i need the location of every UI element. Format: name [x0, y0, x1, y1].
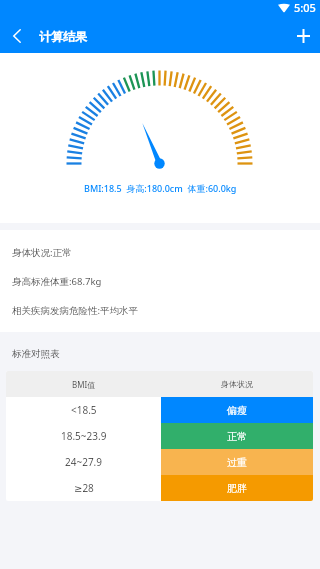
staticText: 标准对照表 [12, 348, 60, 360]
staticText: BMI:18.5 身高:180.0cm 体重:60.0kg [84, 182, 237, 194]
button[interactable]: 身高标准体重:68.7kg [0, 267, 320, 296]
staticText: 24~27.9 [65, 455, 102, 469]
staticText: 5:05 [294, 0, 316, 15]
staticText: 身体状况:正常 [12, 246, 72, 259]
staticText: <18.5 [71, 403, 97, 417]
staticText: 计算结果 [39, 29, 87, 44]
button[interactable]: 相关疾病发病危险性:平均水平 [0, 296, 320, 325]
button[interactable]: ≥28 [6, 475, 313, 501]
staticText: 身高标准体重:68.7kg [12, 275, 102, 288]
button[interactable]: 身体状况:正常 [0, 238, 320, 267]
button[interactable]: 18.5~23.9 [6, 423, 313, 449]
staticText: 身体状况 [221, 379, 253, 389]
staticText: ≥28 [74, 481, 94, 495]
button[interactable]: Add [287, 19, 320, 52]
staticText: 正常 [227, 430, 247, 443]
staticText: 18.5~23.9 [61, 429, 107, 443]
staticText: 偏瘦 [227, 404, 247, 417]
staticText: 肥胖 [227, 482, 247, 495]
staticText: 相关疾病发病危险性:平均水平 [12, 304, 139, 317]
staticText: BMI值 [72, 379, 96, 390]
button[interactable]: <18.5 [6, 397, 313, 423]
staticText: 过重 [227, 456, 247, 469]
button[interactable]: 24~27.9 [6, 449, 313, 475]
button[interactable]: Back [0, 19, 33, 52]
